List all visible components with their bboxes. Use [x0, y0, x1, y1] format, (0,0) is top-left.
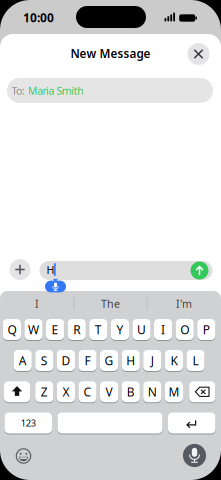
- staticText: 10:00: [23, 9, 54, 25]
- staticText: S: [41, 352, 48, 368]
- button[interactable]: I: [154, 319, 172, 340]
- staticText: K: [170, 352, 177, 368]
- staticText: R: [73, 321, 80, 337]
- staticText: G: [105, 352, 114, 368]
- staticText: B: [127, 384, 135, 400]
- staticText: O: [180, 321, 189, 337]
- staticText: Maria Smith: [28, 83, 84, 98]
- staticText: I: [161, 321, 165, 337]
- button[interactable]: C: [78, 381, 97, 402]
- button[interactable]: V: [100, 381, 118, 402]
- button[interactable]: S: [35, 350, 53, 371]
- button[interactable]: I'm: [154, 294, 214, 312]
- staticText: New Message: [70, 45, 150, 61]
- staticText: The: [101, 296, 120, 311]
- staticText: I: [35, 296, 39, 311]
- button[interactable]: Send: [190, 261, 208, 279]
- button[interactable]: N: [143, 381, 161, 402]
- button[interactable]: Emoji: [15, 448, 31, 464]
- staticText: X: [62, 384, 69, 400]
- button[interactable]: Delete: [189, 381, 215, 402]
- staticText: E: [52, 321, 59, 337]
- button[interactable]: R: [68, 319, 86, 340]
- staticText: To:: [11, 83, 25, 98]
- button[interactable]: D: [57, 350, 75, 371]
- button[interactable]: X: [57, 381, 75, 402]
- staticText: Y: [116, 321, 123, 337]
- staticText: W: [28, 321, 39, 337]
- button[interactable]: Return: [168, 412, 215, 433]
- button[interactable]: J: [143, 350, 161, 371]
- button[interactable]: T: [89, 319, 107, 340]
- staticText: H: [46, 263, 54, 277]
- button[interactable]: K: [165, 350, 183, 371]
- button[interactable]: M: [165, 381, 183, 402]
- staticText: A: [19, 352, 27, 368]
- button[interactable]: F: [78, 350, 97, 371]
- button[interactable]: Q: [3, 319, 21, 340]
- staticText: D: [61, 352, 70, 368]
- button[interactable]: B: [122, 381, 140, 402]
- staticText: M: [168, 384, 179, 400]
- button[interactable]: H: [122, 350, 140, 371]
- button[interactable]: E: [46, 319, 64, 340]
- button[interactable]: Shift: [4, 381, 30, 402]
- button[interactable]: Message: [39, 261, 212, 280]
- button[interactable]: P: [197, 319, 215, 340]
- staticText: H: [126, 352, 135, 368]
- button[interactable]: W: [24, 319, 43, 340]
- button[interactable]: O: [176, 319, 194, 340]
- staticText: Q: [7, 321, 16, 337]
- staticText: V: [106, 384, 113, 400]
- staticText: 123: [21, 417, 36, 429]
- button[interactable]: The: [80, 294, 140, 312]
- staticText: U: [137, 321, 146, 337]
- button[interactable]: Y: [111, 319, 129, 340]
- staticText: I'm: [176, 296, 192, 311]
- staticText: J: [151, 352, 154, 368]
- button[interactable]: A: [14, 350, 32, 371]
- button[interactable]: 123: [4, 412, 52, 433]
- button[interactable]: I: [7, 294, 67, 312]
- staticText: N: [148, 384, 157, 400]
- staticText: L: [192, 352, 198, 368]
- staticText: T: [95, 321, 102, 337]
- button[interactable]: Z: [35, 381, 53, 402]
- button[interactable]: G: [100, 350, 118, 371]
- button[interactable]: Add attachment: [9, 259, 30, 280]
- staticText: P: [203, 321, 210, 337]
- button[interactable]: Close: [187, 43, 209, 65]
- staticText: F: [84, 352, 90, 368]
- button[interactable]: To:: [7, 78, 213, 103]
- staticText: Z: [41, 384, 48, 400]
- button[interactable]: L: [186, 350, 205, 371]
- button[interactable]: Dictation: [183, 444, 206, 467]
- staticText: C: [83, 384, 91, 400]
- button[interactable]: space: [57, 412, 162, 433]
- button[interactable]: U: [132, 319, 151, 340]
